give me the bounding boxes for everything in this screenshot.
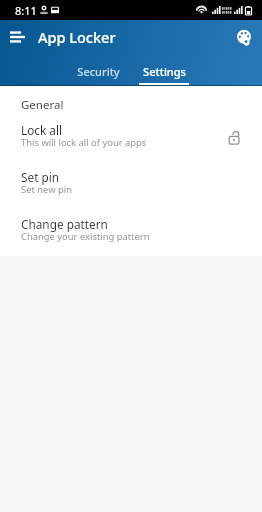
button[interactable]: Change pattern [0,207,262,254]
button[interactable]: Settings [131,57,197,85]
staticText: Settings [143,64,186,79]
button[interactable]: Lock all [0,113,262,160]
staticText: 8:11 [15,3,37,18]
staticText: Security [77,64,120,79]
staticText: Set pin [21,169,60,185]
staticText: Change your existing pattern [21,230,150,243]
button[interactable]: Open navigation menu [2,22,32,52]
button[interactable]: Security [65,57,131,85]
staticText: Lock all [21,122,63,138]
button[interactable]: Change theme [229,22,259,52]
staticText: Set new pin [21,183,73,196]
staticText: General [21,97,64,113]
button[interactable]: Set pin [0,160,262,207]
staticText: App Locker [38,27,116,47]
staticText: This will lock all of your apps [21,136,147,149]
staticText: Change pattern [21,216,108,232]
